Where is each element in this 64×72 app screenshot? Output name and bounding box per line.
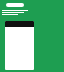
button[interactable] [6,3,24,7]
